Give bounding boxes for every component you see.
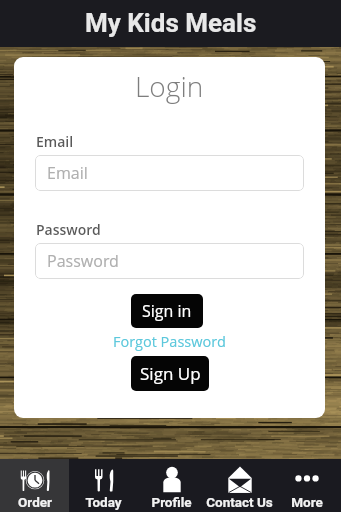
button[interactable]: Password	[35, 243, 304, 279]
staticText: Forgot Password	[113, 332, 226, 352]
staticText: More	[291, 494, 323, 510]
staticText: Password	[36, 220, 101, 239]
staticText: Sign in	[142, 300, 192, 322]
staticText: My Kids Meals	[85, 8, 257, 38]
button[interactable]: Forgot Password	[109, 331, 230, 353]
staticText: Login	[135, 67, 204, 105]
staticText: Profile	[151, 494, 192, 510]
button[interactable]: Today	[69, 459, 137, 512]
staticText: Password	[47, 250, 119, 272]
staticText: Email	[47, 162, 88, 184]
staticText: Sign Up	[140, 362, 201, 385]
button[interactable]: Email	[35, 155, 304, 191]
staticText: Email	[36, 132, 74, 151]
staticText: Contact Us	[206, 494, 273, 510]
button[interactable]: Order	[0, 459, 69, 512]
button[interactable]: Sign in	[131, 294, 203, 328]
button[interactable]: Profile	[137, 459, 205, 512]
button[interactable]: My Kids Meals	[0, 0, 341, 47]
button[interactable]: Sign Up	[131, 356, 209, 391]
staticText: Today	[85, 494, 122, 510]
button[interactable]: More	[273, 459, 341, 512]
button[interactable]: Contact Us	[205, 459, 273, 512]
staticText: Order	[18, 494, 52, 510]
